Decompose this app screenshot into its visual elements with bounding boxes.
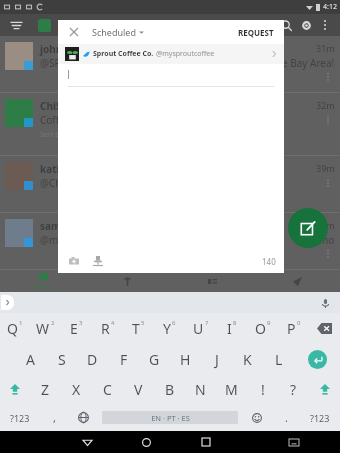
button[interactable]: M	[216, 374, 247, 404]
staticText: john_a	[40, 42, 73, 56]
staticText: Sent by	[40, 130, 63, 139]
button[interactable]: ?123	[300, 404, 340, 431]
staticText: 4	[111, 319, 115, 327]
button[interactable]: U	[185, 313, 216, 344]
button[interactable]: Comma	[40, 404, 68, 431]
button[interactable]: X	[61, 374, 92, 404]
staticText: ?123	[10, 412, 30, 424]
button[interactable]: REQUEST	[236, 25, 276, 40]
staticText: 9	[267, 319, 271, 327]
button[interactable]: Enter	[294, 344, 340, 374]
staticText: katies	[40, 162, 71, 176]
staticText: Scheduled	[92, 26, 136, 38]
staticText: samg	[40, 219, 68, 233]
button[interactable]: Z	[30, 374, 61, 404]
button[interactable]: Change language	[68, 404, 99, 431]
staticText: 5	[141, 319, 145, 327]
staticText: O	[255, 319, 266, 338]
button[interactable]: Keyboard	[270, 431, 317, 453]
button[interactable]: Close	[66, 24, 82, 40]
button[interactable]: O	[247, 313, 278, 344]
staticText: 4:12	[323, 2, 337, 12]
button[interactable]: V	[123, 374, 154, 404]
staticText: 8	[233, 319, 237, 327]
button[interactable]: Shift	[309, 374, 340, 404]
staticText: Inbox	[34, 282, 52, 291]
button[interactable]: Inbox	[0, 270, 85, 292]
staticText: K	[243, 350, 252, 369]
button[interactable]: Logo	[38, 19, 51, 32]
button[interactable]: I	[216, 313, 247, 344]
staticText: Y	[163, 319, 171, 338]
button[interactable]: E	[61, 313, 92, 344]
button[interactable]: Q	[0, 313, 30, 344]
button[interactable]: Back	[58, 431, 117, 453]
button[interactable]: katies	[0, 156, 340, 213]
button[interactable]: W	[30, 313, 61, 344]
button[interactable]: Home	[117, 431, 176, 453]
button[interactable]: B	[154, 374, 185, 404]
button[interactable]: K	[232, 344, 263, 374]
staticText: uy mo	[305, 233, 335, 247]
staticText: G	[149, 350, 160, 369]
button[interactable]: C	[92, 374, 123, 404]
button[interactable]: john_a	[0, 36, 340, 93]
button[interactable]: samg	[0, 213, 340, 270]
button[interactable]: A	[15, 344, 46, 374]
staticText: C	[103, 380, 112, 399]
button[interactable]: R	[92, 313, 123, 344]
button[interactable]: Expand suggestions	[1, 295, 14, 310]
staticText: REQUEST	[238, 27, 274, 38]
staticText: P	[287, 319, 296, 338]
button[interactable]: N	[185, 374, 216, 404]
staticText: 140	[262, 256, 276, 267]
button[interactable]: Add photo	[66, 253, 82, 269]
button[interactable]: L	[263, 344, 294, 374]
staticText: 7	[205, 319, 209, 327]
button[interactable]: Search	[276, 15, 296, 35]
button[interactable]: ?	[278, 374, 309, 404]
button[interactable]: Compose	[288, 208, 328, 248]
staticText: Q	[7, 319, 18, 338]
button[interactable]: Menu	[8, 17, 24, 33]
button[interactable]: Scheduled	[92, 26, 144, 38]
button[interactable]: Voice input	[318, 296, 332, 310]
button[interactable]: T	[123, 313, 154, 344]
staticText: R	[101, 319, 110, 338]
button[interactable]: Space	[102, 411, 238, 424]
button[interactable]: Tab 1	[85, 270, 170, 292]
button[interactable]: Recents	[176, 431, 235, 453]
staticText: N	[195, 380, 206, 399]
button[interactable]: J	[201, 344, 232, 374]
staticText: Coffe	[40, 113, 65, 127]
staticText: D	[87, 350, 98, 369]
button[interactable]: Settings	[296, 15, 316, 35]
button[interactable]: Emoji	[241, 404, 272, 431]
staticText: ,	[53, 410, 56, 425]
button[interactable]: More options	[316, 16, 334, 34]
button[interactable]: Y	[154, 313, 185, 344]
button[interactable]: Insert asset	[90, 253, 106, 269]
button[interactable]: Sprout Coffee Co.	[58, 44, 284, 64]
button[interactable]: Tab 3	[255, 270, 340, 292]
button[interactable]: D	[77, 344, 108, 374]
button[interactable]: S	[46, 344, 77, 374]
button[interactable]: Backspace	[309, 313, 340, 344]
button[interactable]: !	[247, 374, 278, 404]
staticText: M	[225, 380, 238, 399]
button[interactable]: F	[108, 344, 139, 374]
staticText: 0	[297, 319, 301, 327]
button[interactable]: Tab 2	[170, 270, 255, 292]
button[interactable]: Shift	[0, 374, 30, 404]
staticText: B	[165, 380, 175, 399]
staticText: I	[227, 319, 232, 338]
button[interactable]: G	[139, 344, 170, 374]
staticText: ?123	[310, 412, 330, 424]
staticText: S	[58, 350, 66, 369]
staticText: 31m	[316, 42, 335, 54]
button[interactable]: P	[278, 313, 309, 344]
button[interactable]: ?123	[0, 404, 40, 431]
button[interactable]: Period	[272, 404, 300, 431]
button[interactable]: H	[170, 344, 201, 374]
button[interactable]: ChiSp	[0, 93, 340, 156]
